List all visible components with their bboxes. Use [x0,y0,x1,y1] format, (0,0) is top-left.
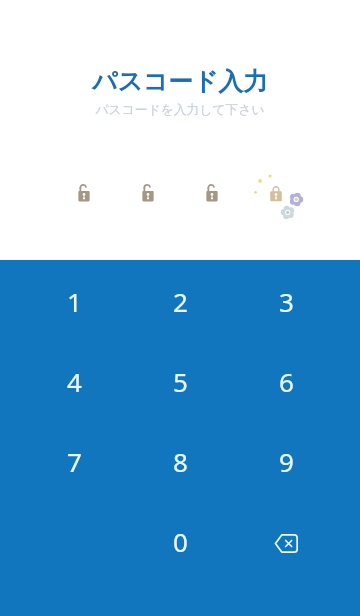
button[interactable]: 2 [140,271,220,331]
button[interactable]: Backspace [246,511,326,571]
button[interactable]: 4 [34,351,114,411]
staticText: 7 [67,444,82,479]
button[interactable]: 3 [246,271,326,331]
staticText: 1 [67,284,82,319]
button[interactable]: 7 [34,431,114,491]
button[interactable]: 9 [246,431,326,491]
staticText: 0 [173,524,188,559]
staticText: 4 [67,364,82,399]
staticText: 2 [173,284,188,319]
button[interactable]: 6 [246,351,326,411]
button[interactable]: 1 [34,271,114,331]
staticText: 3 [279,284,294,319]
staticText: 6 [279,364,294,399]
staticText: パスコードを入力して下さい [95,102,265,118]
staticText: パスコード入力 [92,66,268,97]
staticText: 8 [173,444,188,479]
button[interactable]: 5 [140,351,220,411]
button[interactable]: 8 [140,431,220,491]
staticText: 9 [279,444,294,479]
other: Passcode progress [0,0,360,616]
staticText: 5 [173,364,188,399]
button[interactable]: 0 [140,511,220,571]
